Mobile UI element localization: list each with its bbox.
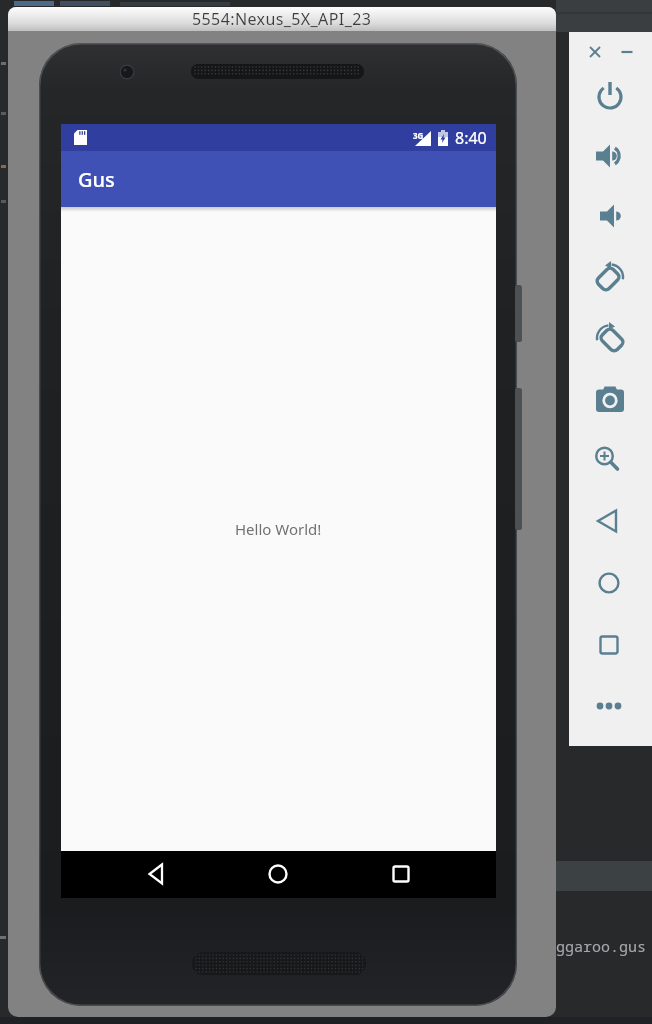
- button[interactable]: [591, 688, 627, 724]
- button[interactable]: [590, 503, 626, 539]
- button[interactable]: Gus: [61, 151, 496, 207]
- staticText: Gus: [78, 166, 115, 193]
- staticText: 8:40: [455, 127, 487, 149]
- button[interactable]: [577, 34, 613, 70]
- button[interactable]: [609, 34, 645, 70]
- button[interactable]: [266, 862, 290, 886]
- button[interactable]: [389, 862, 413, 886]
- staticText: ggaroo.gus: [556, 936, 647, 956]
- button[interactable]: [145, 862, 169, 886]
- button[interactable]: [590, 441, 626, 477]
- button[interactable]: [592, 259, 628, 295]
- button[interactable]: 5554:Nexus_5X_API_23: [8, 7, 556, 31]
- button[interactable]: [591, 627, 627, 663]
- button[interactable]: [591, 198, 627, 234]
- staticText: Hello World!: [235, 519, 322, 539]
- button[interactable]: [592, 78, 628, 114]
- button[interactable]: [591, 565, 627, 601]
- button[interactable]: [592, 320, 628, 356]
- staticText: 3G: [413, 130, 424, 141]
- staticText: 5554:Nexus_5X_API_23: [192, 8, 372, 30]
- button[interactable]: [592, 380, 628, 416]
- button[interactable]: [591, 138, 627, 174]
